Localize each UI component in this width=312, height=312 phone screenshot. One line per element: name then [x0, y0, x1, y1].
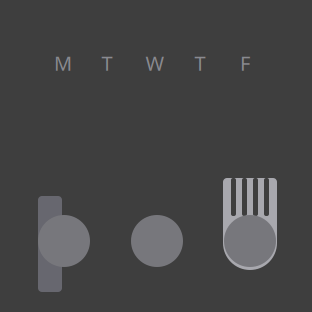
staticText: T [194, 50, 205, 76]
button[interactable]: Item three [224, 215, 276, 267]
staticText: M [54, 50, 72, 76]
staticText: W [145, 50, 164, 76]
button[interactable]: Item two [131, 215, 183, 267]
button[interactable]: Item one [38, 215, 90, 267]
staticText: F [240, 50, 250, 76]
staticText: T [101, 50, 112, 76]
